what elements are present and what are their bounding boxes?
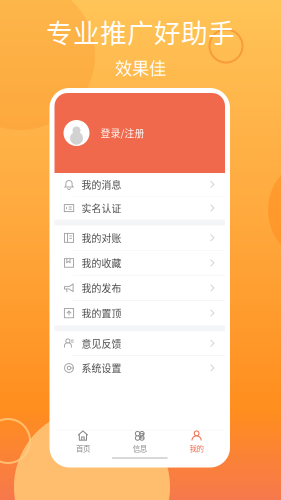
staticText: 意见反馈 xyxy=(81,336,121,351)
button[interactable]: 我的收藏 xyxy=(54,251,225,275)
staticText: 信息 xyxy=(133,443,147,454)
staticText: 我的收藏 xyxy=(81,256,121,270)
button[interactable]: 实名认证 xyxy=(54,197,225,220)
button[interactable]: 我的置顶 xyxy=(54,301,225,325)
button[interactable]: 意见反馈 xyxy=(54,331,225,355)
staticText: 我的置顶 xyxy=(81,306,121,320)
staticText: 我的消息 xyxy=(81,177,121,192)
button[interactable]: 我的消息 xyxy=(54,173,225,196)
staticText: 系统设置 xyxy=(81,361,121,375)
staticText: 专业推广好助手 xyxy=(46,12,235,51)
staticText: 登录/注册 xyxy=(100,126,144,140)
staticText: 我的对账 xyxy=(81,231,121,245)
staticText: 实名认证 xyxy=(81,201,121,215)
button[interactable]: 我的对账 xyxy=(54,226,225,250)
staticText: 首页 xyxy=(76,443,90,454)
staticText: 我的 xyxy=(190,443,204,454)
staticText: 我的发布 xyxy=(81,281,121,295)
button[interactable]: 信息 xyxy=(111,427,168,457)
staticText: 效果佳 xyxy=(115,55,166,80)
button[interactable]: 首页 xyxy=(54,427,111,457)
button[interactable]: 我的 xyxy=(168,427,225,457)
button[interactable]: 系统设置 xyxy=(54,356,225,380)
button[interactable]: 我的发布 xyxy=(54,276,225,300)
